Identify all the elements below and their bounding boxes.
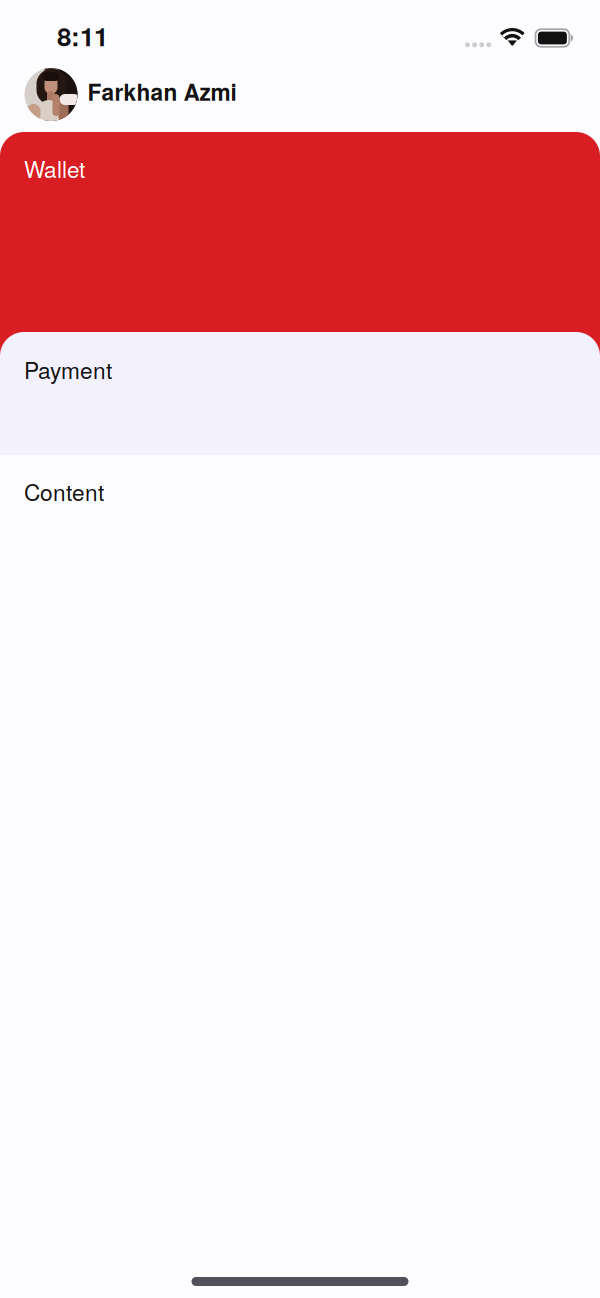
staticText: Payment — [24, 353, 112, 385]
staticText: 8:11 — [57, 17, 108, 54]
staticText: Farkhan Azmi — [87, 75, 236, 108]
button[interactable]: Wallet — [0, 132, 600, 332]
button[interactable]: Content — [0, 455, 600, 1298]
button[interactable]: Farkhan Azmi — [0, 68, 600, 124]
staticText: Wallet — [24, 152, 85, 184]
button[interactable]: Payment — [0, 332, 600, 455]
staticText: Content — [24, 475, 104, 507]
